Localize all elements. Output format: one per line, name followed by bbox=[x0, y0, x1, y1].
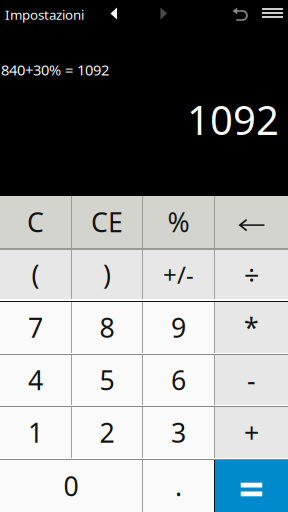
staticText: 2 bbox=[99, 415, 114, 450]
button[interactable]: 0 bbox=[0, 460, 142, 512]
staticText: CE bbox=[91, 204, 123, 240]
staticText: . bbox=[175, 468, 182, 504]
button[interactable]: ÷ bbox=[215, 250, 288, 299]
staticText: 6 bbox=[171, 362, 186, 398]
button[interactable]: + bbox=[215, 407, 288, 458]
staticText: 3 bbox=[171, 415, 186, 450]
button[interactable]: % bbox=[143, 196, 214, 248]
staticText: ) bbox=[103, 257, 111, 292]
staticText: 1092 bbox=[187, 93, 279, 146]
staticText: 4 bbox=[28, 362, 43, 398]
button[interactable]: Menu bbox=[262, 3, 283, 23]
button[interactable]: Previous bbox=[104, 3, 124, 23]
staticText: * bbox=[244, 310, 259, 345]
staticText: C bbox=[27, 204, 44, 240]
staticText: 9 bbox=[171, 310, 186, 345]
staticText: ÷ bbox=[244, 257, 259, 292]
button[interactable]: Undo bbox=[228, 3, 248, 23]
button[interactable]: . bbox=[143, 460, 214, 512]
staticText: ( bbox=[31, 257, 39, 292]
staticText: Impostazioni bbox=[5, 6, 84, 23]
staticText: 7 bbox=[28, 310, 43, 345]
staticText: 0 bbox=[63, 468, 78, 504]
staticText: + bbox=[244, 415, 259, 450]
button[interactable]: 2 bbox=[72, 407, 142, 458]
button[interactable]: CE bbox=[72, 196, 142, 248]
button[interactable]: Backspace bbox=[215, 196, 288, 248]
button[interactable]: 7 bbox=[0, 302, 71, 353]
staticText: +/- bbox=[163, 259, 194, 290]
button[interactable]: ( bbox=[0, 250, 71, 299]
staticText: 8 bbox=[99, 310, 114, 345]
button[interactable]: 3 bbox=[143, 407, 214, 458]
button[interactable]: 6 bbox=[143, 355, 214, 405]
button[interactable]: C bbox=[0, 196, 71, 248]
staticText: 5 bbox=[99, 362, 114, 398]
button[interactable]: 5 bbox=[72, 355, 142, 405]
staticText: % bbox=[167, 204, 189, 240]
button[interactable]: Equals bbox=[215, 460, 288, 512]
button[interactable]: 9 bbox=[143, 302, 214, 353]
button[interactable]: * bbox=[215, 302, 288, 353]
button[interactable]: ) bbox=[72, 250, 142, 299]
staticText: 840+30% = 1092 bbox=[1, 60, 109, 79]
staticText: - bbox=[247, 362, 256, 398]
button[interactable]: 8 bbox=[72, 302, 142, 353]
button[interactable]: Next bbox=[154, 3, 174, 23]
button[interactable]: - bbox=[215, 355, 288, 405]
button[interactable]: 1 bbox=[0, 407, 71, 458]
staticText: 1 bbox=[28, 415, 43, 450]
button[interactable]: 4 bbox=[0, 355, 71, 405]
button[interactable]: +/- bbox=[143, 250, 214, 299]
